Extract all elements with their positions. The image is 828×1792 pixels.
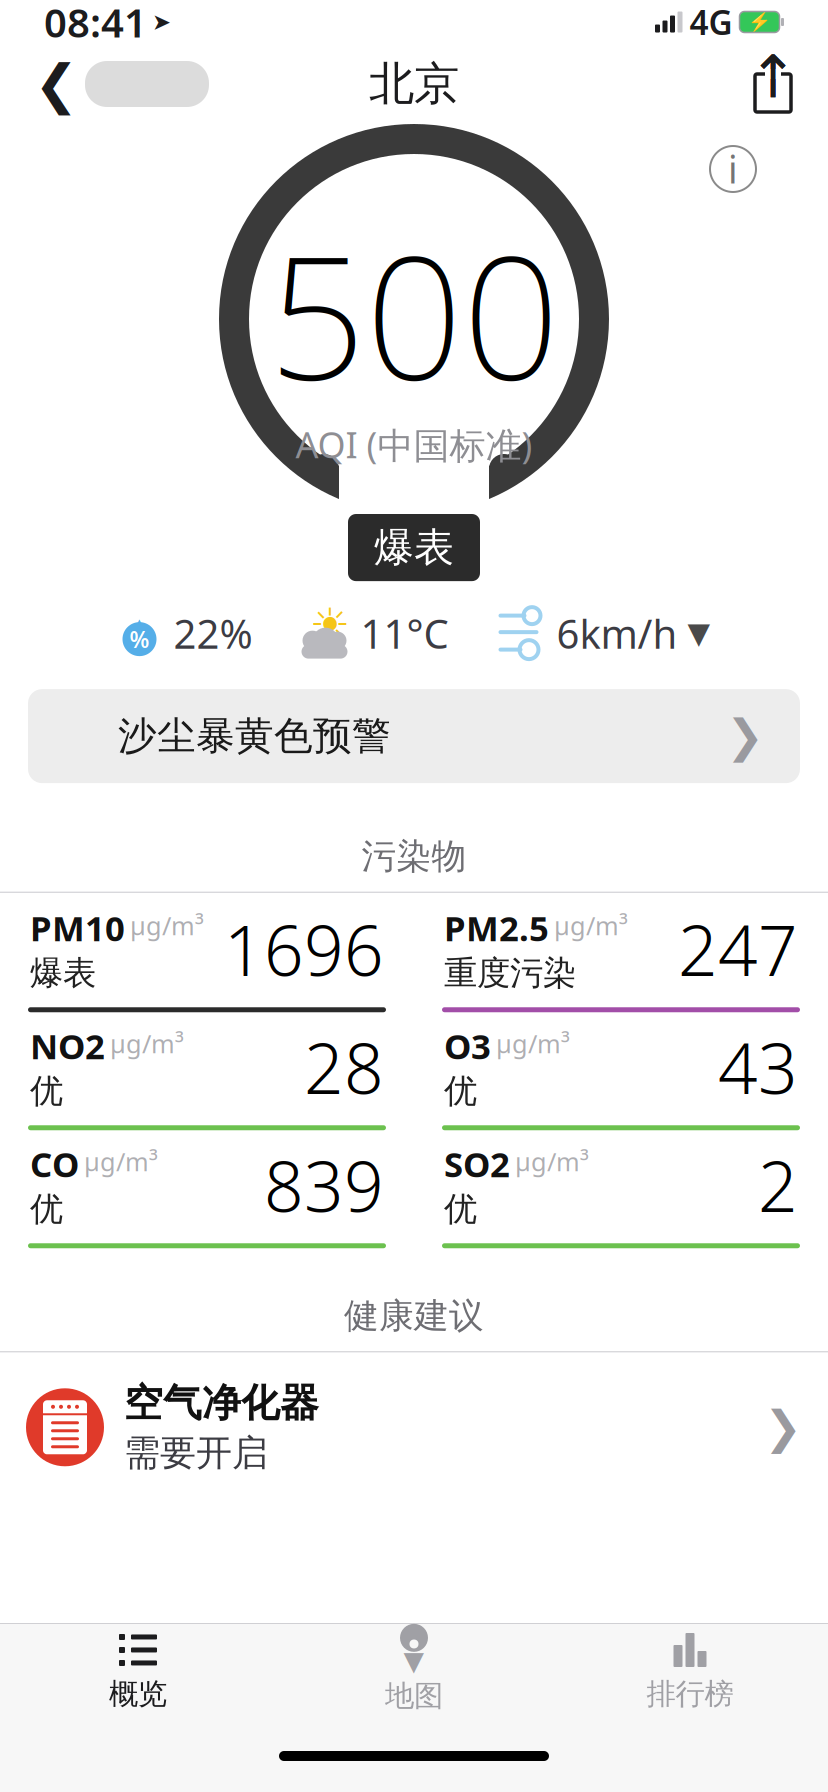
staticText: 6km/h: [556, 607, 677, 660]
staticText: 11°C: [360, 607, 448, 660]
staticText: 优: [30, 1189, 63, 1230]
staticText: 排行榜: [646, 1676, 733, 1712]
staticText: ☀: [309, 599, 350, 651]
staticText: µg/m³: [554, 909, 628, 942]
staticText: 需要开启: [124, 1431, 268, 1475]
staticText: O3: [444, 1023, 491, 1069]
staticText: PM10: [30, 905, 125, 951]
staticText: 4G: [689, 0, 732, 44]
staticText: CO: [30, 1141, 79, 1187]
staticText: NO2: [30, 1023, 105, 1069]
staticText: %: [129, 624, 149, 654]
staticText: 247: [678, 903, 798, 995]
button[interactable]: 返回: [24, 49, 219, 119]
staticText: ⚡: [748, 11, 771, 33]
button[interactable]: ▼: [276, 1624, 552, 1720]
staticText: ❯: [726, 710, 764, 762]
staticText: ↑: [748, 44, 797, 110]
staticText: 2: [758, 1139, 798, 1231]
staticText: 健康建议: [344, 1295, 484, 1337]
staticText: 1696: [224, 903, 384, 995]
staticText: PM2.5: [444, 905, 549, 951]
staticText: 22%: [173, 607, 252, 660]
staticText: ↑: [748, 44, 797, 110]
staticText: ▼: [687, 616, 710, 650]
button[interactable]: 概览: [0, 1624, 276, 1720]
staticText: 839: [264, 1139, 384, 1231]
staticText: 优: [30, 1071, 63, 1112]
staticText: µg/m³: [84, 1145, 158, 1178]
staticText: 08:41: [44, 0, 147, 48]
staticText: ▲: [128, 611, 151, 645]
button[interactable]: 说明: [710, 146, 756, 192]
staticText: AQI (中国标准): [295, 420, 532, 468]
staticText: µg/m³: [110, 1027, 184, 1060]
staticText: 优: [444, 1071, 477, 1112]
staticText: 28: [304, 1021, 384, 1113]
staticText: µg/m³: [496, 1027, 570, 1060]
staticText: ❮: [34, 54, 79, 114]
staticText: i: [728, 144, 738, 194]
staticText: 500: [268, 200, 559, 426]
staticText: 污染物: [361, 835, 466, 878]
staticText: 重度污染: [444, 953, 576, 994]
staticText: 爆表: [30, 953, 96, 994]
staticText: µg/m³: [130, 909, 204, 942]
button[interactable]: 分享: [742, 49, 804, 119]
staticText: 北京: [369, 56, 459, 112]
button[interactable]: 排行榜: [552, 1624, 828, 1720]
staticText: ▼: [403, 1646, 424, 1676]
staticText: 空气净化器: [124, 1379, 319, 1427]
staticText: 地图: [385, 1678, 443, 1714]
staticText: 爆表: [374, 523, 454, 572]
staticText: µg/m³: [515, 1145, 589, 1178]
button[interactable]: 空气净化器: [0, 1374, 828, 1480]
staticText: SO2: [444, 1141, 510, 1187]
staticText: 43: [718, 1021, 798, 1113]
button[interactable]: 沙尘暴黄色预警: [28, 689, 800, 783]
staticText: 沙尘暴黄色预警: [118, 712, 391, 760]
staticText: ➤: [152, 9, 171, 35]
staticText: 优: [444, 1189, 477, 1230]
staticText: ❯: [764, 1402, 802, 1453]
staticText: 概览: [109, 1676, 167, 1712]
